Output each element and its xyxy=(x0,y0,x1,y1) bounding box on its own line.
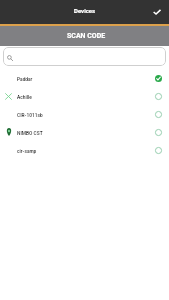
button[interactable]: Search devices xyxy=(3,47,166,66)
staticText: NIMBO CST xyxy=(17,131,43,137)
staticText: cir-samp xyxy=(17,149,37,155)
button[interactable]: Achille xyxy=(0,87,169,105)
button[interactable]: Paddar xyxy=(0,69,169,87)
button[interactable]: NIMBO CST xyxy=(0,123,169,141)
staticText: CIR-1011sb xyxy=(17,113,43,119)
button[interactable]: CIR-1011sb xyxy=(0,105,169,123)
button[interactable]: cir-samp xyxy=(0,141,169,159)
staticText: Paddar xyxy=(17,77,33,83)
staticText: Achille xyxy=(17,95,32,101)
staticText: Devices xyxy=(74,7,96,14)
button[interactable]: SCAN CODE xyxy=(0,26,169,46)
button[interactable]: Confirm selection xyxy=(150,5,164,19)
staticText: SCAN CODE xyxy=(67,32,106,40)
